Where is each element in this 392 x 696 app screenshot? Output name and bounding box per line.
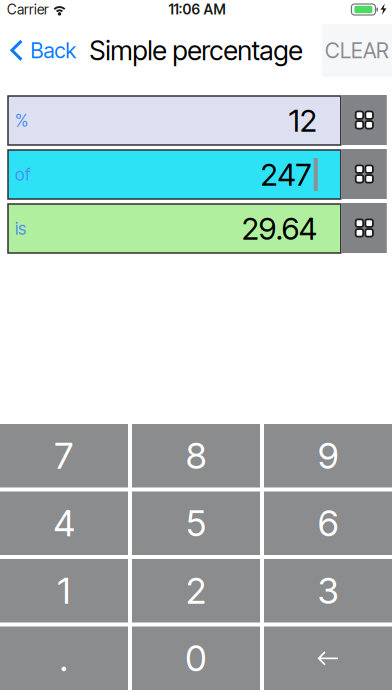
staticText: 9 xyxy=(318,434,338,478)
staticText: 12 xyxy=(289,102,317,139)
staticText: 8 xyxy=(186,434,206,478)
staticText: 2 xyxy=(186,569,206,613)
button[interactable]: CLEAR xyxy=(322,24,392,77)
staticText: 6 xyxy=(318,501,338,545)
staticText: 3 xyxy=(317,569,338,613)
staticText: % xyxy=(15,110,28,131)
button[interactable]: 5 xyxy=(132,491,260,555)
staticText: 1 xyxy=(57,569,70,613)
staticText: 7 xyxy=(54,434,73,478)
button[interactable]: 9 xyxy=(264,424,392,487)
button[interactable]: Keypad for is xyxy=(342,203,387,253)
staticText: Carrier xyxy=(7,1,49,18)
button[interactable]: 4 xyxy=(0,491,128,555)
staticText: Back xyxy=(30,38,76,63)
staticText: 11:06 AM xyxy=(168,1,225,18)
staticText: . xyxy=(59,636,68,680)
staticText: 0 xyxy=(185,636,206,680)
button[interactable]: 6 xyxy=(264,491,392,555)
staticText: is xyxy=(15,218,26,239)
staticText: 247 xyxy=(260,156,311,193)
staticText: 5 xyxy=(186,501,206,545)
staticText: CLEAR xyxy=(325,38,389,63)
button[interactable]: 1 xyxy=(0,559,128,622)
staticText: 4 xyxy=(53,501,74,545)
button[interactable]: Keypad for % xyxy=(342,95,387,145)
button[interactable]: 3 xyxy=(264,559,392,622)
staticText: 29.64 xyxy=(242,210,317,247)
staticText: of xyxy=(15,164,30,185)
button[interactable]: 2 xyxy=(132,559,260,622)
button[interactable]: Back xyxy=(0,24,78,77)
button[interactable]: 0 xyxy=(132,626,260,690)
button[interactable]: . xyxy=(0,626,128,690)
button[interactable]: 7 xyxy=(0,424,128,487)
button[interactable]: Delete xyxy=(264,626,392,690)
button[interactable]: 8 xyxy=(132,424,260,487)
button[interactable]: Keypad for of xyxy=(342,149,387,199)
staticText: Simple percentage xyxy=(89,34,302,67)
